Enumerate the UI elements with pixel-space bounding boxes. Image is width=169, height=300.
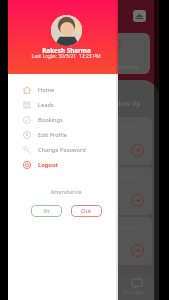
button[interactable]: In (31, 205, 62, 217)
button[interactable]: Bookings (8, 112, 118, 127)
button[interactable]: Leads (8, 97, 118, 112)
staticText: 2 (111, 52, 117, 64)
button[interactable]: Out (71, 205, 102, 217)
staticText: Follow Up (109, 99, 141, 108)
button[interactable]: Rakesh Sharma (96, 167, 152, 215)
button[interactable]: Rakesh Sharma (96, 117, 152, 165)
button[interactable]: Home (8, 82, 118, 97)
staticText: In (44, 207, 50, 215)
other: Open lead (131, 144, 144, 157)
staticText: Change Password (38, 146, 86, 154)
staticText: Edit Profile (38, 131, 67, 139)
staticText: Messages (122, 289, 144, 295)
button[interactable]: Messages (127, 274, 147, 294)
staticText: Logout (38, 161, 59, 169)
staticText: Leads (38, 101, 54, 109)
staticText: Feedbacks (111, 63, 139, 70)
button[interactable]: Edit Profile (8, 127, 118, 142)
button[interactable]: Rakesh Sharma (96, 217, 152, 265)
other: Open lead (131, 194, 144, 207)
staticText: Bookings (38, 116, 63, 124)
staticText: Rakesh Sharma (15, 46, 118, 55)
staticText: Attendance (14, 188, 118, 196)
staticText: Rakesh Sharma (100, 174, 137, 181)
button[interactable]: Change Password (8, 142, 118, 157)
staticText: Rakesh Sharma (100, 224, 137, 231)
other: Open lead (131, 244, 144, 257)
button[interactable]: Logo (133, 10, 146, 22)
staticText: Home (38, 86, 55, 94)
staticText: Last Login: 30/3/21 12:23 PM (14, 53, 118, 60)
staticText: Out (81, 207, 92, 215)
staticText: Rakesh Sharma (100, 124, 137, 131)
button[interactable]: Logout (8, 157, 118, 172)
button[interactable]: 2 (106, 33, 150, 74)
